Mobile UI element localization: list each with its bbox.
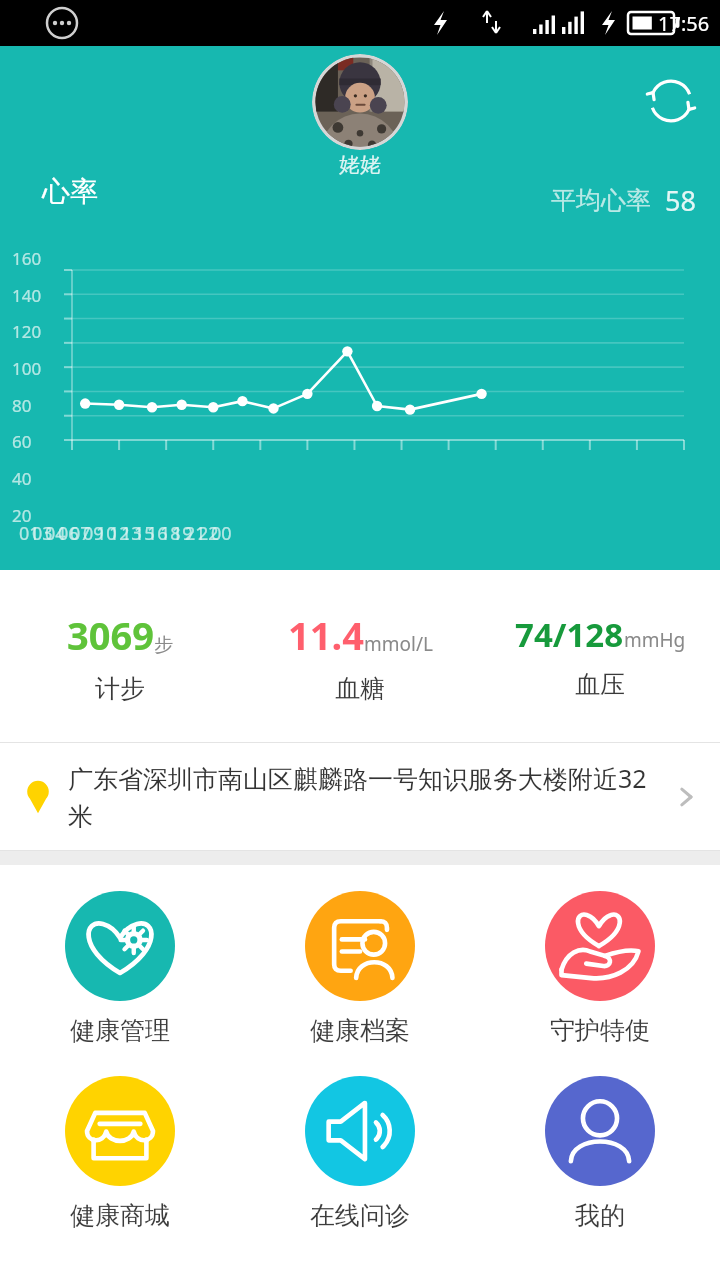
staticText: 22 (198, 521, 219, 546)
staticText: mmol/L (364, 631, 433, 657)
staticText: 100 (12, 357, 42, 380)
staticText: 04 (45, 521, 66, 546)
staticText: 心率 (42, 174, 98, 209)
button[interactable]: 74/128 (480, 606, 720, 706)
staticText: 40 (12, 467, 32, 490)
staticText: 03 (32, 521, 53, 546)
staticText: 11.4 (288, 609, 364, 661)
button[interactable]: Refresh (640, 70, 702, 132)
staticText: 74/128 (515, 612, 624, 657)
staticText: 步 (154, 633, 173, 657)
staticText: 06 (58, 521, 79, 546)
button[interactable]: 3069 (0, 603, 240, 710)
staticText: 19 (172, 521, 193, 546)
staticText: 00 (211, 521, 232, 546)
staticText: 健康商城 (70, 1200, 170, 1231)
staticText: 16 (147, 521, 168, 546)
staticText: 血糖 (335, 673, 385, 704)
staticText: 20 (12, 504, 32, 527)
staticText: 160 (12, 247, 42, 270)
staticText: 07 (70, 521, 91, 546)
staticText: 3069 (67, 609, 154, 661)
staticText: 血压 (575, 669, 625, 700)
button[interactable]: 我的 (480, 1072, 720, 1235)
staticText: 广东省深圳市南山区麒麟路一号知识服务大楼附近32米 (68, 761, 662, 832)
button[interactable]: 健康商城 (0, 1072, 240, 1235)
staticText: 21 (185, 521, 206, 546)
staticText: 120 (12, 320, 42, 343)
staticText: 80 (12, 394, 32, 417)
staticText: 01 (19, 521, 40, 546)
staticText: 18 (160, 521, 181, 546)
button[interactable]: 11.4 (240, 603, 480, 710)
staticText: 在线问诊 (310, 1200, 410, 1231)
staticText: 健康管理 (70, 1015, 170, 1046)
button[interactable]: 守护特使 (480, 887, 720, 1050)
button[interactable]: Location (0, 743, 720, 850)
staticText: 140 (12, 284, 42, 307)
button[interactable]: 在线问诊 (240, 1072, 480, 1235)
staticText: 60 (12, 430, 32, 453)
staticText: 17:56 (658, 10, 710, 37)
button[interactable]: 健康档案 (240, 887, 480, 1050)
staticText: 58 (665, 182, 696, 219)
staticText: 姥姥 (339, 152, 381, 178)
staticText: 计步 (95, 673, 145, 704)
other: Location (20, 779, 56, 815)
staticText: 我的 (575, 1200, 625, 1231)
button[interactable]: 健康管理 (0, 887, 240, 1050)
staticText: 15 (134, 521, 155, 546)
staticText: 守护特使 (550, 1015, 650, 1046)
staticText: 09 (83, 521, 104, 546)
staticText: mmHg (624, 627, 686, 653)
button[interactable]: Profile photo (312, 54, 408, 150)
staticText: 13 (121, 521, 142, 546)
staticText: 10 (96, 521, 117, 546)
staticText: 平均心率 (551, 185, 651, 216)
staticText: 12 (109, 521, 130, 546)
staticText: 健康档案 (310, 1015, 410, 1046)
